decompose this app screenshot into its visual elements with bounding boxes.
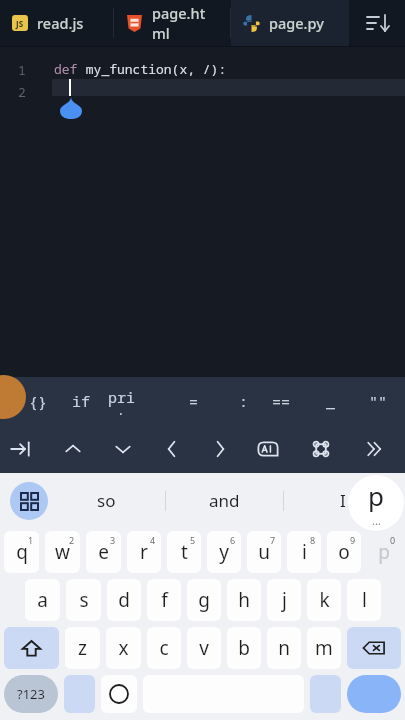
staticText: z bbox=[78, 635, 87, 661]
staticText: j bbox=[282, 587, 287, 613]
staticText: read.js bbox=[37, 13, 84, 33]
staticText: 4 bbox=[150, 534, 156, 546]
staticText: if bbox=[72, 391, 91, 411]
staticText: p bbox=[378, 539, 390, 565]
button[interactable]: Enter bbox=[347, 675, 401, 713]
staticText: JS bbox=[16, 18, 24, 29]
button[interactable]: r bbox=[127, 531, 161, 573]
staticText: print bbox=[108, 387, 140, 415]
button[interactable]: u bbox=[247, 531, 281, 573]
button[interactable]: Right bbox=[202, 431, 238, 467]
staticText: 8 bbox=[310, 534, 316, 546]
button[interactable]: Emoji bbox=[101, 675, 137, 713]
button[interactable]: m bbox=[307, 627, 341, 669]
button[interactable]: = bbox=[178, 387, 210, 415]
button[interactable]: o bbox=[327, 531, 361, 573]
staticText: : bbox=[239, 391, 249, 411]
staticText: f bbox=[161, 587, 168, 613]
button[interactable]: y bbox=[207, 531, 241, 573]
button[interactable]: Comma bbox=[64, 675, 95, 713]
button[interactable]: a bbox=[25, 579, 60, 621]
button[interactable]: {} bbox=[22, 387, 54, 415]
staticText: 2 bbox=[69, 534, 75, 546]
button[interactable]: p bbox=[367, 531, 401, 573]
button[interactable]: JS bbox=[0, 0, 113, 46]
button[interactable]: I bbox=[284, 473, 401, 528]
staticText: so bbox=[97, 489, 116, 512]
staticText: "" bbox=[369, 391, 388, 411]
button[interactable]: Period bbox=[310, 675, 341, 713]
button[interactable]: page.html bbox=[114, 0, 230, 46]
button[interactable]: so bbox=[48, 473, 165, 528]
staticText: 5 bbox=[190, 534, 196, 546]
button[interactable]: "" bbox=[362, 387, 394, 415]
button[interactable]: b bbox=[227, 627, 261, 669]
button[interactable]: page.py bbox=[231, 0, 349, 46]
button[interactable]: Down bbox=[105, 431, 141, 467]
staticText: d bbox=[118, 587, 130, 613]
staticText: h bbox=[238, 587, 250, 613]
button[interactable]: v bbox=[187, 627, 221, 669]
button[interactable]: e bbox=[86, 531, 121, 573]
staticText: r bbox=[140, 539, 148, 565]
staticText: 9 bbox=[350, 534, 356, 546]
staticText: 6 bbox=[230, 534, 236, 546]
button[interactable]: j bbox=[267, 579, 301, 621]
staticText: page.html bbox=[152, 3, 218, 43]
button[interactable]: and bbox=[166, 473, 283, 528]
button[interactable]: l bbox=[347, 579, 381, 621]
button[interactable]: ?123 bbox=[4, 675, 58, 713]
button[interactable]: More bbox=[356, 431, 392, 467]
staticText: my_function(x, /): bbox=[78, 60, 227, 78]
button[interactable]: print bbox=[108, 387, 140, 415]
staticText: i bbox=[302, 539, 307, 565]
button[interactable]: : bbox=[228, 387, 260, 415]
staticText: o bbox=[338, 539, 350, 565]
button[interactable]: w bbox=[45, 531, 80, 573]
staticText: ... bbox=[372, 513, 381, 528]
staticText: g bbox=[198, 587, 210, 613]
button[interactable]: _ bbox=[315, 387, 347, 415]
staticText: and bbox=[209, 489, 240, 512]
button[interactable]: Shift bbox=[4, 627, 59, 669]
button[interactable]: AI bbox=[250, 431, 286, 467]
button[interactable]: k bbox=[307, 579, 341, 621]
staticText: 3 bbox=[110, 534, 116, 546]
staticText: ?123 bbox=[17, 685, 45, 703]
button[interactable]: h bbox=[227, 579, 261, 621]
staticText: 7 bbox=[270, 534, 276, 546]
staticText: t bbox=[181, 539, 188, 565]
button[interactable]: d bbox=[107, 579, 141, 621]
button[interactable]: f bbox=[147, 579, 181, 621]
button[interactable]: n bbox=[267, 627, 301, 669]
button[interactable]: i bbox=[287, 531, 321, 573]
staticText: I bbox=[340, 489, 346, 512]
button[interactable]: Tab bbox=[4, 431, 40, 467]
staticText: m bbox=[315, 635, 333, 661]
staticText: 1 bbox=[28, 534, 34, 546]
button[interactable]: Left bbox=[154, 431, 190, 467]
staticText: 2 bbox=[18, 83, 26, 101]
staticText: {} bbox=[29, 391, 48, 411]
button[interactable]: Backspace bbox=[347, 627, 401, 669]
button[interactable]: if bbox=[65, 387, 97, 415]
staticText: p bbox=[368, 478, 384, 513]
button[interactable]: g bbox=[187, 579, 221, 621]
staticText: u bbox=[258, 539, 270, 565]
button[interactable]: Command bbox=[303, 431, 339, 467]
staticText: k bbox=[319, 587, 330, 613]
button[interactable]: q bbox=[4, 531, 39, 573]
button[interactable]: x bbox=[106, 627, 141, 669]
staticText: _ bbox=[326, 391, 336, 411]
button[interactable]: z bbox=[65, 627, 100, 669]
button[interactable]: Up bbox=[55, 431, 91, 467]
button[interactable]: Apps bbox=[10, 482, 48, 520]
button[interactable]: t bbox=[167, 531, 201, 573]
button[interactable]: == bbox=[265, 387, 297, 415]
staticText: l bbox=[362, 587, 367, 613]
button[interactable]: s bbox=[66, 579, 101, 621]
button[interactable]: c bbox=[147, 627, 181, 669]
button[interactable]: Sort bbox=[349, 0, 405, 46]
staticText: 1 bbox=[18, 61, 26, 79]
